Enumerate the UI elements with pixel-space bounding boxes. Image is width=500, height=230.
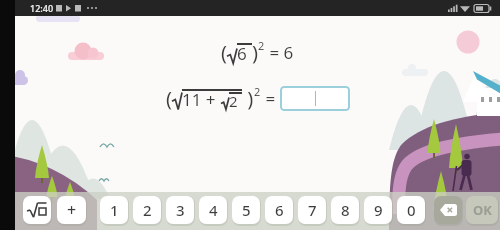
staticText: 11 + (182, 88, 221, 111)
staticText: 5 (242, 200, 251, 220)
staticText: = (261, 87, 280, 110)
staticText: 1 (110, 200, 119, 220)
staticText: = 6 (265, 41, 294, 64)
staticText: ) (252, 39, 258, 66)
button[interactable]: 8 (331, 196, 359, 224)
staticText: 3 (176, 200, 185, 220)
button[interactable]: + (57, 196, 86, 224)
staticText: ( (221, 39, 227, 66)
staticText: 2 (254, 84, 261, 99)
staticText: 0 (407, 200, 416, 220)
button[interactable] (280, 86, 350, 111)
button[interactable]: 1 (100, 196, 128, 224)
staticText: OK (473, 201, 492, 219)
staticText: ) (242, 85, 254, 112)
button[interactable]: 6 (265, 196, 293, 224)
button[interactable]: 7 (298, 196, 326, 224)
button[interactable]: 2 (133, 196, 161, 224)
button[interactable]: 9 (364, 196, 392, 224)
button[interactable]: 3 (166, 196, 194, 224)
staticText: 4 (209, 200, 218, 220)
staticText: + (67, 199, 77, 221)
staticText: 9 (374, 200, 383, 220)
staticText: 6 (237, 42, 252, 65)
staticText: 6 (275, 200, 284, 220)
staticText: 8 (341, 200, 350, 220)
staticText: 2 (143, 200, 152, 220)
button[interactable] (434, 196, 462, 224)
staticText: 2 (229, 91, 242, 111)
staticText: 7 (308, 200, 317, 220)
button[interactable]: 5 (232, 196, 260, 224)
staticText: 2 (258, 38, 265, 53)
button[interactable]: OK (466, 196, 498, 224)
staticText: ( (166, 85, 172, 112)
button[interactable]: 4 (199, 196, 227, 224)
button[interactable]: 0 (397, 196, 425, 224)
staticText: 12:40 (30, 2, 54, 14)
button[interactable] (23, 196, 51, 224)
